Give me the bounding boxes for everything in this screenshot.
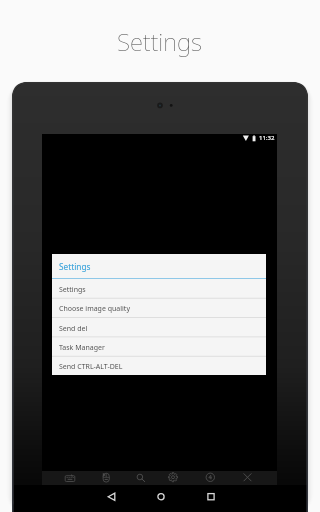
button[interactable]: Task Manager: [52, 338, 266, 357]
button[interactable]: Recents: [114, 485, 164, 512]
button[interactable]: Send del: [52, 319, 266, 338]
button[interactable]: Settings: [52, 280, 266, 299]
staticText: 11:32: [259, 134, 275, 142]
staticText: Settings: [59, 261, 91, 272]
staticText: Task Manager: [59, 343, 105, 353]
button[interactable]: Mouse: [78, 471, 114, 485]
button[interactable]: Account: [186, 471, 222, 485]
staticText: Choose image quality: [59, 304, 130, 314]
button[interactable]: Close: [222, 471, 258, 485]
button[interactable]: Settings: [150, 471, 186, 485]
button[interactable]: Send CTRL-ALT-DEL: [52, 357, 266, 376]
button[interactable]: Home: [64, 485, 114, 512]
button[interactable]: Keyboard: [42, 471, 78, 485]
staticText: Send CTRL-ALT-DEL: [59, 362, 123, 372]
button[interactable]: Search: [114, 471, 150, 485]
staticText: Send del: [59, 324, 88, 334]
button[interactable]: Choose image quality: [52, 299, 266, 318]
staticText: Settings: [59, 285, 86, 295]
staticText: Settings: [117, 25, 203, 58]
